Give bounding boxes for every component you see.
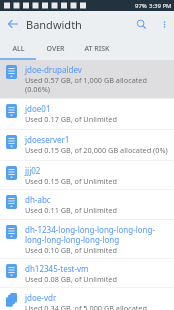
staticText: dh12345-test-vm	[25, 263, 89, 274]
button[interactable]: Search	[128, 11, 154, 37]
staticText: Used 0.57 GB, of 1,000 GB allocated (0.0…	[25, 75, 170, 94]
button[interactable]: dh-abc	[0, 190, 174, 219]
staticText: Used 0.34 GB, of 5,000 GB allocated	[25, 303, 147, 310]
staticText: dh-abc	[25, 194, 51, 205]
button[interactable]: AT RISK	[74, 37, 120, 60]
staticText: OVER	[46, 44, 65, 54]
button[interactable]: ALL	[0, 37, 36, 60]
button[interactable]: OVER	[36, 37, 74, 60]
staticText: Used 0.08 GB, of Unlimited	[25, 274, 117, 284]
staticText: jdoeserver1	[25, 134, 70, 145]
staticText: 3:39 PM	[149, 2, 172, 10]
button[interactable]: jdoe-drupaldev	[0, 60, 174, 98]
staticText: Used 0.17 GB, of Unlimited	[25, 114, 117, 124]
button[interactable]: More options	[154, 14, 174, 34]
staticText: Used 0.15 GB, of 20,000 GB allocated (0%…	[25, 145, 168, 155]
button[interactable]: jdoeserver1	[0, 130, 174, 160]
staticText: Bandwidth	[26, 17, 82, 32]
staticText: Used 0.11 GB, of Unlimited	[25, 205, 117, 215]
staticText: jdoe-drupaldev	[25, 64, 82, 75]
button[interactable]: dh-1234-long-long-long-long-long-long-lo…	[0, 220, 174, 258]
button[interactable]: dh12345-test-vm	[0, 259, 174, 287]
button[interactable]: jjj02	[0, 161, 174, 189]
staticText: 97%	[135, 2, 147, 10]
staticText: ALL	[12, 44, 25, 54]
button[interactable]: Back	[0, 11, 26, 37]
staticText: Used 0.10 GB, of Unlimited	[25, 245, 117, 255]
staticText: AT RISK	[84, 44, 110, 54]
staticText: Used 0.15 GB, of Unlimited	[25, 176, 117, 186]
staticText: jdoe01	[25, 103, 51, 114]
button[interactable]: jdoe-vdr	[0, 288, 174, 310]
button[interactable]: jdoe01	[0, 99, 174, 129]
staticText: jdoe-vdr	[25, 292, 57, 303]
staticText: dh-1234-long-long-long-long-long-long-lo…	[25, 224, 170, 245]
staticText: jjj02	[25, 165, 41, 176]
